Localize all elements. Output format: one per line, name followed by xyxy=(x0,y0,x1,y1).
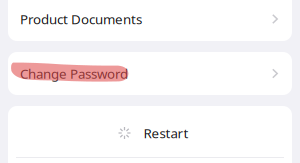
staticText: Change Password xyxy=(20,64,128,83)
staticText: Product Documents xyxy=(20,10,142,28)
button[interactable]: Restart xyxy=(11,107,295,159)
button[interactable]: Change Password xyxy=(8,52,292,95)
staticText: Restart xyxy=(143,124,188,142)
button[interactable]: Product Documents xyxy=(8,0,292,41)
